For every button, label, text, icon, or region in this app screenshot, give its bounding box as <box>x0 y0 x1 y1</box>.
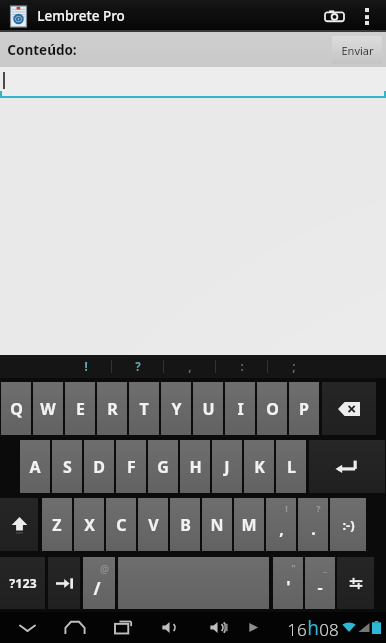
button[interactable]: Recents <box>110 612 136 643</box>
staticText: X <box>84 514 95 536</box>
staticText: Lembrete Pro <box>37 7 125 25</box>
staticText: ; <box>292 359 296 375</box>
button[interactable]: C <box>106 498 136 551</box>
button[interactable]: A <box>20 440 50 493</box>
staticText: Enviar <box>341 43 374 58</box>
button[interactable]: ?123 <box>0 557 45 609</box>
button[interactable]: Enter <box>309 440 385 493</box>
staticText: R <box>107 398 118 420</box>
button[interactable]: " <box>273 557 303 609</box>
staticText: , <box>188 359 192 375</box>
button[interactable]: J <box>212 440 242 493</box>
staticText: : <box>240 359 244 375</box>
button[interactable]: F <box>116 440 146 493</box>
staticText: _ <box>323 561 327 573</box>
staticText: I <box>237 398 244 420</box>
button[interactable]: Q <box>1 382 31 435</box>
staticText: N <box>210 514 224 536</box>
button[interactable]: , <box>164 355 216 378</box>
staticText: M <box>241 514 257 536</box>
button[interactable]: K <box>244 440 274 493</box>
button[interactable]: Backspace <box>322 382 376 435</box>
staticText: W <box>40 398 56 420</box>
button[interactable]: X <box>74 498 104 551</box>
staticText: . <box>311 518 316 540</box>
staticText: C <box>116 514 127 536</box>
button[interactable] <box>0 67 386 98</box>
button[interactable]: M <box>234 498 264 551</box>
staticText: K <box>254 456 265 478</box>
other: Keyboard settings <box>348 576 364 591</box>
staticText: G <box>157 456 169 478</box>
staticText: F <box>127 456 136 478</box>
button[interactable]: R <box>97 382 127 435</box>
button[interactable]: More options <box>354 0 380 32</box>
staticText: :-) <box>342 516 355 534</box>
staticText: 08 <box>319 618 339 641</box>
button[interactable]: Keyboard settings <box>337 557 374 609</box>
button[interactable]: O <box>257 382 287 435</box>
button[interactable]: G <box>148 440 178 493</box>
staticText: A <box>29 456 41 478</box>
staticText: U <box>202 398 215 420</box>
button[interactable]: ! <box>266 498 296 551</box>
button[interactable]: Hide keyboard <box>14 612 40 643</box>
staticText: Y <box>171 398 182 420</box>
staticText: S <box>63 456 72 478</box>
button[interactable]: V <box>138 498 168 551</box>
button[interactable]: Z <box>42 498 72 551</box>
button[interactable]: H <box>180 440 210 493</box>
staticText: L <box>287 456 296 478</box>
button[interactable]: Volume down <box>158 612 184 643</box>
button[interactable]: ? <box>298 498 328 551</box>
button[interactable]: P <box>289 382 319 435</box>
other: Tab <box>56 577 73 590</box>
button[interactable]: Enviar <box>332 36 382 64</box>
staticText: T <box>139 398 149 420</box>
staticText: J <box>224 456 230 478</box>
staticText: D <box>93 456 105 478</box>
button[interactable]: D <box>84 440 114 493</box>
staticText: Conteúdo: <box>7 41 77 59</box>
staticText: Q <box>10 398 23 420</box>
button[interactable]: U <box>193 382 223 435</box>
button[interactable]: @ <box>83 557 115 609</box>
staticText: O <box>266 398 279 420</box>
button[interactable]: Play <box>240 612 266 643</box>
button[interactable]: Home <box>62 612 88 643</box>
button[interactable]: ! <box>60 355 112 378</box>
button[interactable]: Camera <box>314 0 354 32</box>
staticText: Z <box>52 514 62 536</box>
button[interactable]: W <box>33 382 63 435</box>
staticText: V <box>148 514 159 536</box>
button[interactable]: T <box>129 382 159 435</box>
button[interactable]: :-) <box>330 498 366 551</box>
other: Backspace <box>338 402 360 416</box>
staticText: - <box>317 576 323 598</box>
staticText: , <box>279 518 284 540</box>
staticText: P <box>299 398 309 420</box>
button[interactable]: N <box>202 498 232 551</box>
button[interactable]: Space <box>118 557 269 609</box>
staticText: / <box>93 577 101 600</box>
button[interactable]: _ <box>305 557 335 609</box>
button[interactable]: B <box>170 498 200 551</box>
staticText: ! <box>84 359 88 375</box>
button[interactable]: Shift <box>0 498 38 551</box>
staticText: ? <box>135 359 141 375</box>
button[interactable]: Volume up <box>206 612 232 643</box>
staticText: ? <box>316 502 321 514</box>
button[interactable]: E <box>65 382 95 435</box>
staticText: ! <box>285 502 288 514</box>
staticText: E <box>76 398 85 420</box>
button[interactable]: L <box>276 440 306 493</box>
button[interactable]: ? <box>112 355 164 378</box>
button[interactable]: I <box>225 382 255 435</box>
button[interactable]: S <box>52 440 82 493</box>
button[interactable]: : <box>216 355 268 378</box>
button[interactable]: ; <box>268 355 320 378</box>
staticText: H <box>189 456 202 478</box>
button[interactable]: Tab <box>48 557 80 609</box>
button[interactable]: Y <box>161 382 191 435</box>
staticText: ?123 <box>9 575 37 592</box>
